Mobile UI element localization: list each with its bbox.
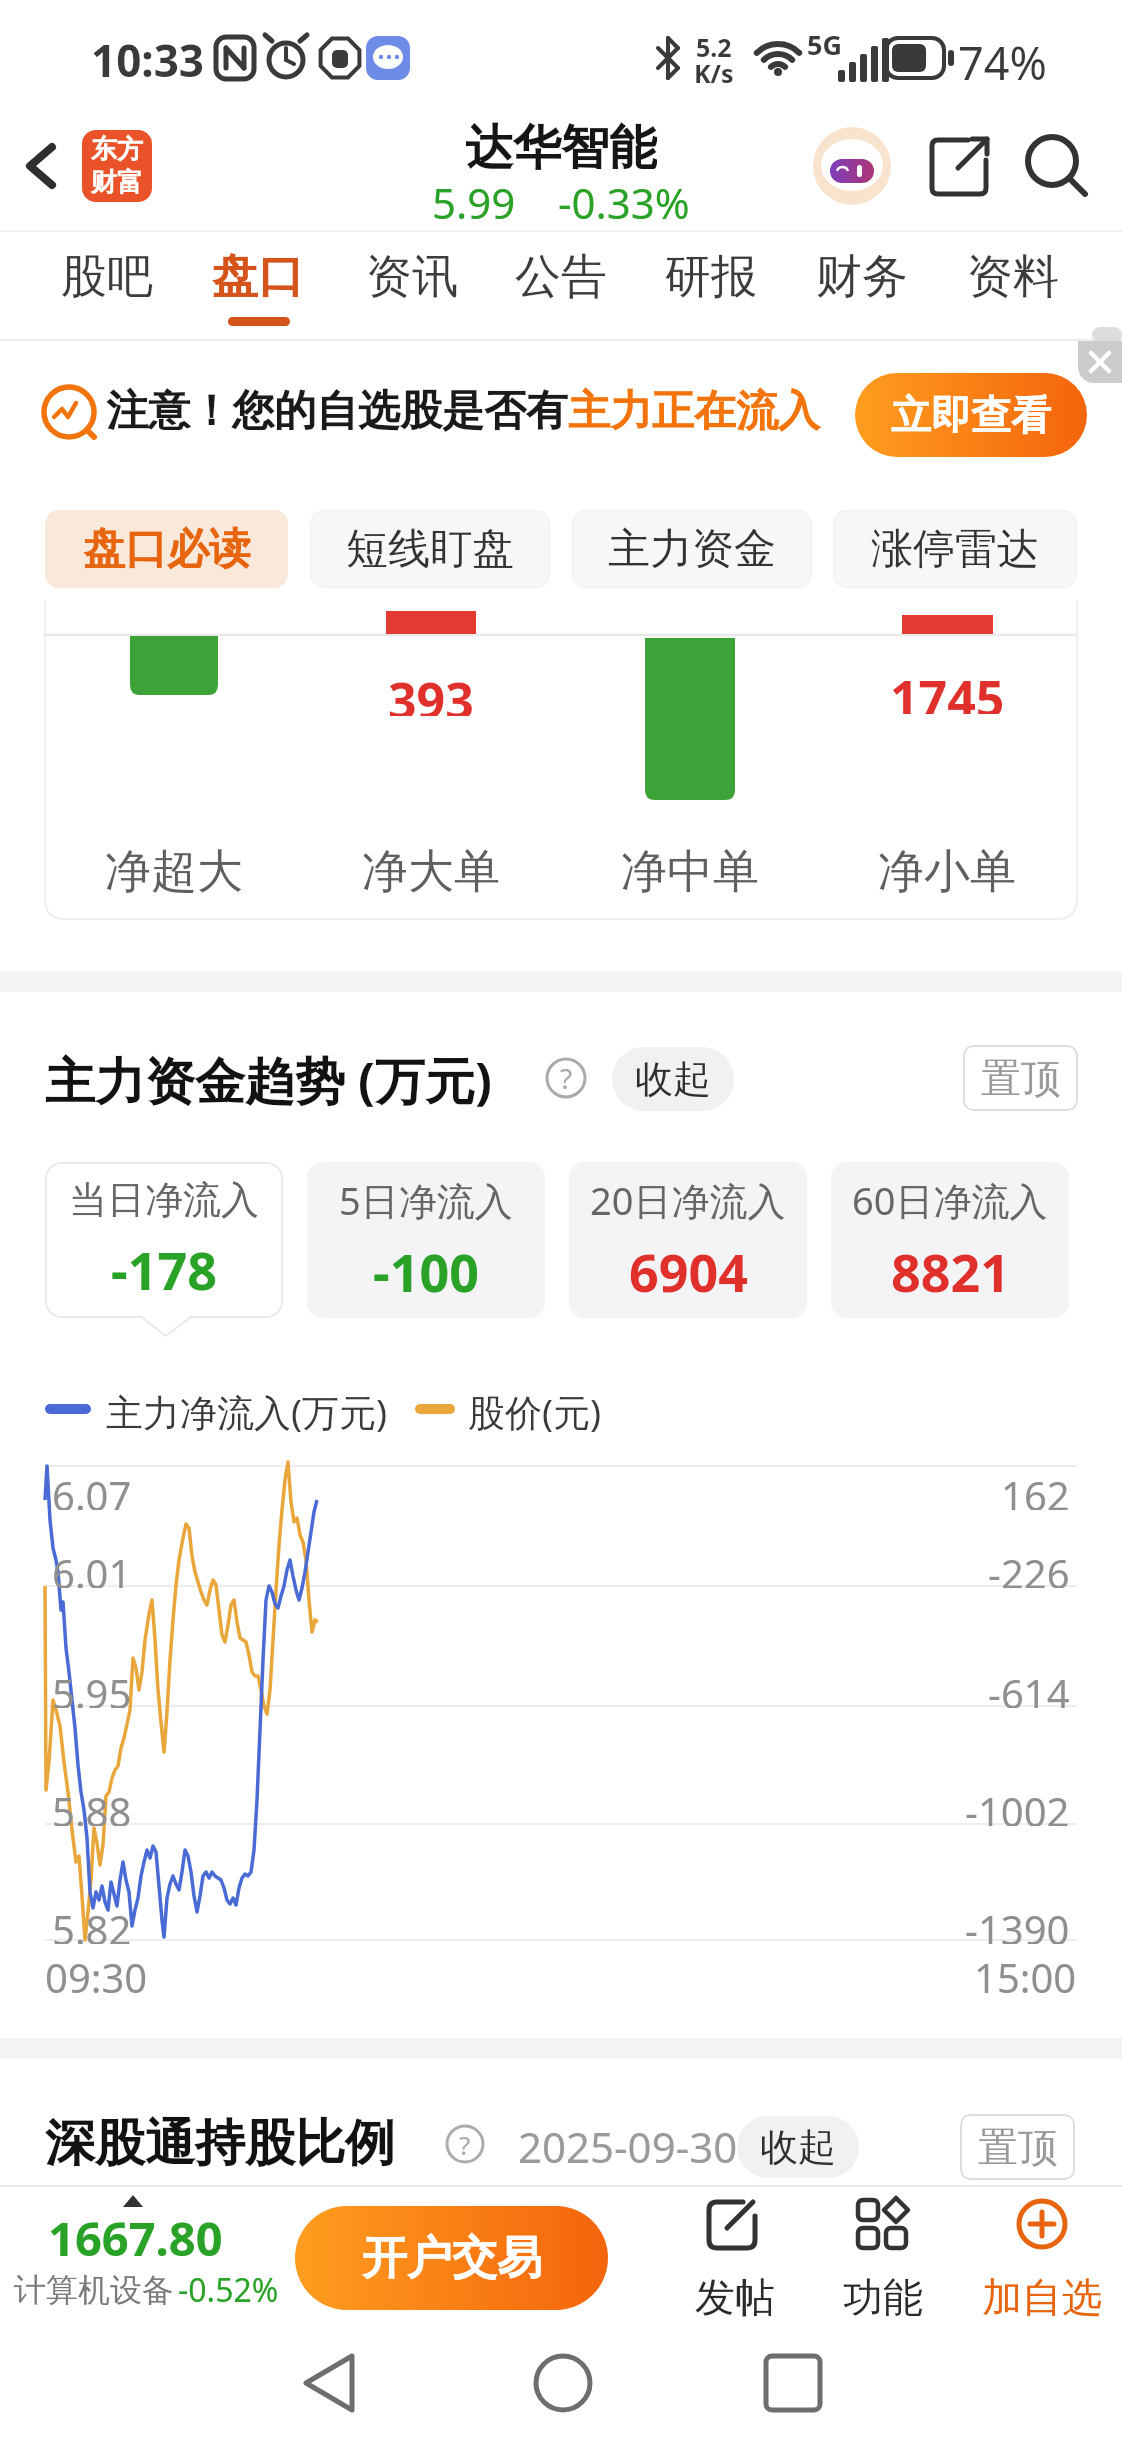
staticText: 主力资金 (608, 523, 776, 576)
staticText: 5.95 (52, 1666, 132, 1708)
staticText: -0.52% (178, 2268, 279, 2312)
button[interactable]: 资讯 (350, 244, 474, 310)
staticText: 2025-09-30 (518, 2118, 738, 2170)
button[interactable] (1078, 341, 1122, 383)
staticText: 短线盯盘 (346, 523, 514, 576)
button[interactable]: 研报 (649, 244, 773, 310)
staticText: 注意！您的自选股是否有 (106, 385, 568, 438)
staticText: 5G (807, 26, 842, 58)
staticText: -614 (988, 1666, 1070, 1708)
button[interactable] (748, 2340, 838, 2430)
staticText: 1667.80 (48, 2206, 223, 2260)
staticText: 立即查看 (891, 390, 1051, 440)
staticText: 393 (388, 666, 474, 716)
staticText: 74% (958, 32, 1047, 84)
staticText: 收起 (760, 2123, 836, 2171)
button[interactable]: 盘口必读 (45, 510, 288, 588)
staticText: -178 (111, 1234, 217, 1305)
staticText: 发帖 (695, 2272, 775, 2318)
staticText: 主力净流入(万元) (106, 1386, 388, 1432)
staticText: 财务 (816, 248, 908, 306)
staticText: 5日净流入 (339, 1174, 513, 1226)
button[interactable]: 5日净流入 (307, 1162, 545, 1318)
staticText: 5.88 (52, 1784, 132, 1826)
staticText: ? (560, 1059, 573, 1097)
button[interactable]: 短线盯盘 (310, 510, 550, 588)
staticText: -1390 (965, 1902, 1070, 1944)
staticText: 盘口 (212, 248, 304, 306)
button[interactable]: 盘口 (196, 244, 320, 310)
staticText: 达华智能 (465, 118, 657, 170)
staticText: ? (459, 2127, 471, 2162)
staticText: 股价(元) (468, 1386, 602, 1432)
staticText: 主力资金趋势 (万元) (45, 1046, 492, 1108)
staticText: 东方 (91, 133, 143, 166)
button[interactable]: 主力资金 (572, 510, 812, 588)
button[interactable]: 立即查看 (855, 373, 1087, 457)
staticText: 开户交易 (362, 2230, 542, 2287)
staticText: 162 (1001, 1468, 1070, 1510)
staticText: 净超大 (105, 843, 243, 893)
button[interactable] (518, 2340, 608, 2430)
staticText: 股吧 (61, 248, 153, 306)
button[interactable]: 股吧 (45, 244, 169, 310)
staticText: 置顶 (978, 2122, 1058, 2172)
staticText: 收起 (635, 1055, 711, 1103)
button[interactable] (1022, 132, 1102, 202)
button[interactable]: 当日净流入 (45, 1162, 283, 1318)
staticText: 计算机设备 (14, 2270, 174, 2310)
button[interactable]: 置顶 (963, 1045, 1078, 1111)
button[interactable]: 加自选 (975, 2192, 1109, 2324)
staticText: 15:00 (974, 1950, 1077, 1998)
staticText: 涨停雷达 (871, 523, 1039, 576)
button[interactable] (0, 2186, 290, 2330)
button[interactable]: 东方 (82, 130, 152, 202)
button[interactable] (16, 135, 72, 197)
staticText: 当日净流入 (69, 1176, 259, 1224)
staticText: 09:30 (45, 1950, 148, 1998)
staticText: -100 (373, 1236, 479, 1307)
staticText: 8821 (891, 1236, 1010, 1307)
staticText: -1002 (965, 1784, 1070, 1826)
staticText: 5.99 (432, 174, 516, 220)
button[interactable]: 置顶 (960, 2114, 1075, 2180)
button[interactable]: 资料 (951, 244, 1075, 310)
staticText: 深股通持股比例 (45, 2112, 395, 2174)
button[interactable] (286, 2340, 376, 2430)
staticText: -0.33% (558, 174, 690, 220)
staticText: 资料 (967, 248, 1059, 306)
staticText: 净大单 (362, 843, 500, 893)
staticText: 10:33 (91, 30, 205, 88)
button[interactable]: 收起 (737, 2116, 859, 2178)
button[interactable]: 收起 (612, 1047, 734, 1111)
staticText: 6.01 (52, 1546, 132, 1588)
staticText: -226 (988, 1546, 1070, 1588)
staticText: 功能 (843, 2272, 923, 2318)
staticText: 净中单 (621, 843, 759, 893)
staticText: 净小单 (878, 843, 1016, 893)
button[interactable]: 财务 (800, 244, 924, 310)
staticText: 60日净流入 (852, 1174, 1048, 1226)
button[interactable]: 20日净流入 (569, 1162, 807, 1318)
button[interactable]: 发帖 (685, 2192, 785, 2324)
staticText: 财富 (91, 166, 143, 199)
button[interactable] (928, 134, 994, 200)
staticText: 主力正在流入 (568, 385, 820, 438)
staticText: 盘口必读 (83, 523, 251, 576)
staticText: 5.82 (52, 1902, 132, 1944)
button[interactable]: 公告 (499, 244, 623, 310)
staticText: 6904 (629, 1236, 748, 1307)
staticText: 公告 (515, 248, 607, 306)
staticText: 20日净流入 (590, 1174, 786, 1226)
button[interactable]: 开户交易 (295, 2206, 608, 2310)
button[interactable]: 60日净流入 (831, 1162, 1069, 1318)
staticText: 置顶 (981, 1053, 1061, 1103)
staticText: 研报 (665, 248, 757, 306)
staticText: 6.07 (52, 1468, 132, 1510)
staticText: K/s (694, 56, 734, 86)
button[interactable]: 功能 (833, 2192, 933, 2324)
button[interactable]: 涨停雷达 (833, 510, 1077, 588)
button[interactable] (813, 127, 891, 205)
staticText: 资讯 (366, 248, 458, 306)
staticText: 加自选 (982, 2272, 1102, 2318)
